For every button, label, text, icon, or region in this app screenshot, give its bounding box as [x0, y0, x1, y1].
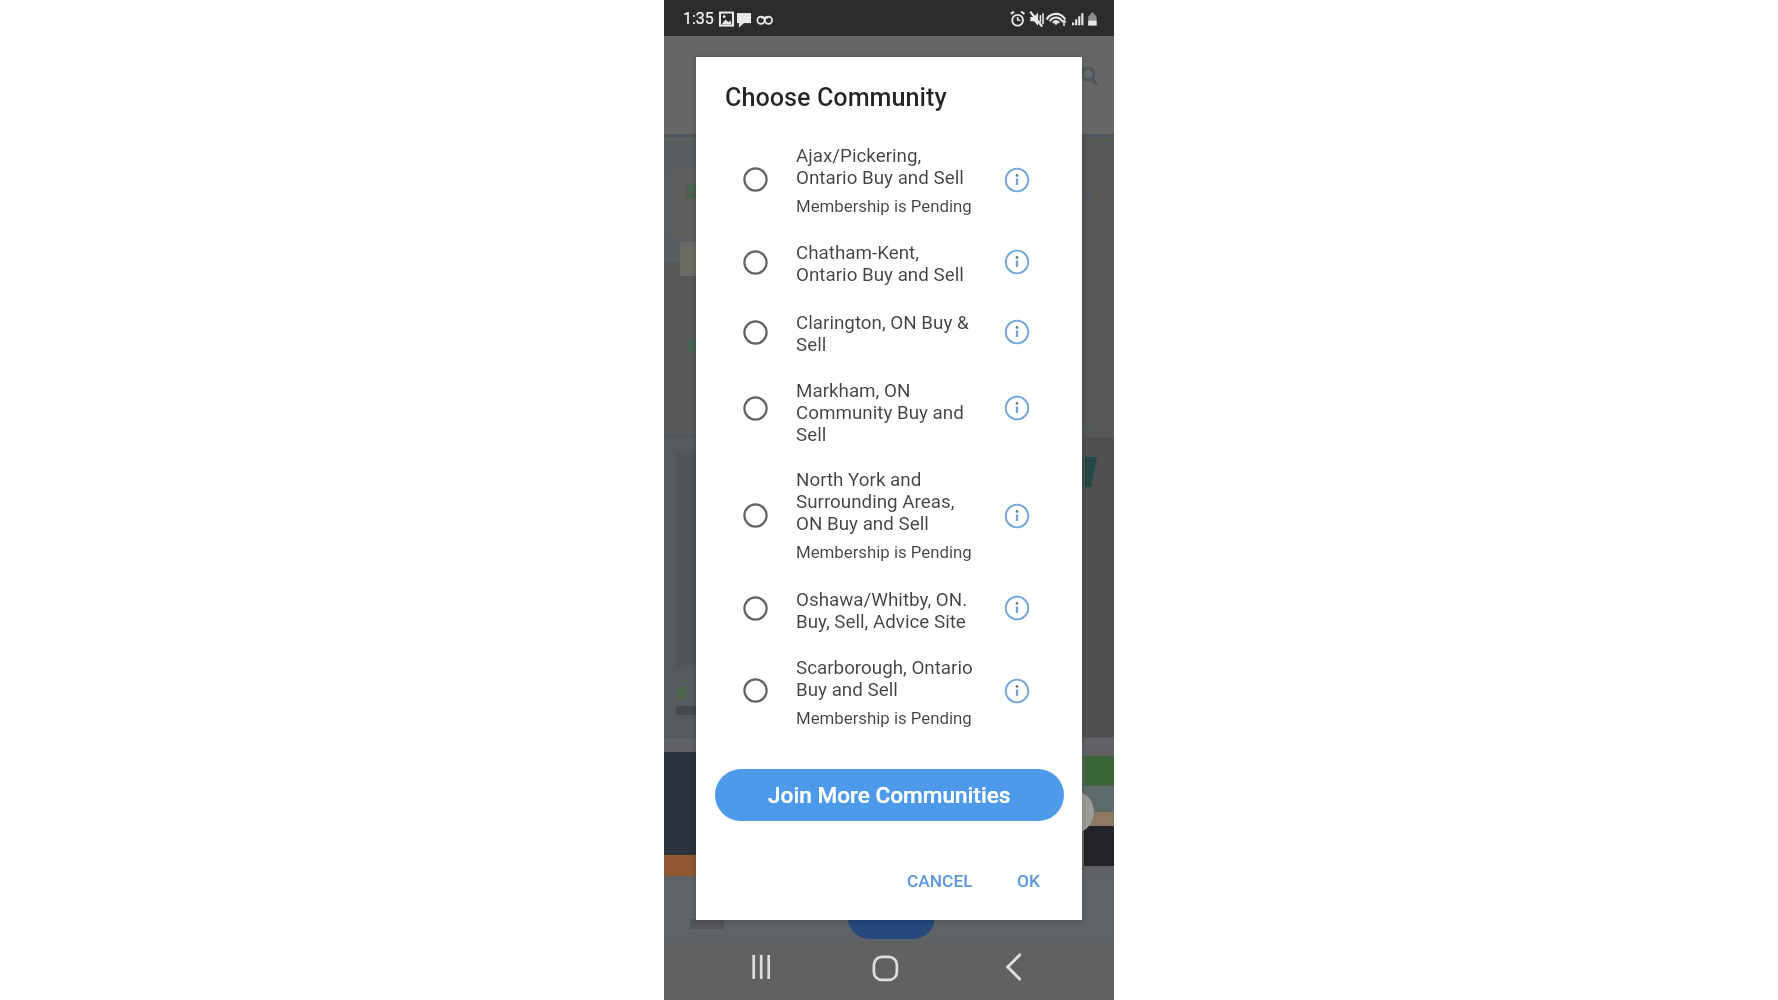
button[interactable]: Oshawa/Whitby, ON. Buy, Sell, Advice Sit…: [736, 580, 998, 636]
staticText: Ontario Buy and Sell: [796, 167, 964, 189]
staticText: Clarington, ON Buy &: [796, 312, 969, 334]
button[interactable]: North York and Surrounding Areas, ON Buy…: [736, 462, 998, 570]
staticText: Community Buy and: [796, 402, 964, 424]
staticText: CANCEL: [907, 871, 973, 891]
staticText: Membership is Pending: [796, 708, 972, 728]
staticText: OK: [1017, 871, 1040, 891]
button[interactable]: Markham, ON Community Buy and Sell: [736, 369, 998, 448]
staticText: 1:35: [683, 9, 714, 28]
staticText: Sell: [796, 334, 827, 356]
staticText: Scarborough, Ontario: [796, 657, 973, 679]
staticText: Ontario Buy and Sell: [796, 264, 964, 286]
button[interactable]: Scarborough, Ontario Buy and Sell: [736, 648, 998, 733]
staticText: ON Buy and Sell: [796, 513, 929, 535]
button[interactable]: Clarington, ON Buy & Sell: [736, 304, 998, 360]
button[interactable]: Ajax/Pickering, Ontario Buy and Sell: [736, 137, 998, 222]
staticText: Surrounding Areas,: [796, 491, 955, 513]
staticText: Oshawa/Whitby, ON.: [796, 589, 968, 611]
button[interactable]: About Ajax/Pickering, Ontario Buy and Se…: [998, 161, 1036, 199]
button[interactable]: CANCEL: [897, 860, 982, 902]
button[interactable]: About Clarington, ON Buy & Sell: [998, 313, 1036, 351]
staticText: Ajax/Pickering,: [796, 145, 922, 167]
button[interactable]: Chatham-Kent, Ontario Buy and Sell: [736, 234, 998, 290]
button[interactable]: About Oshawa/Whitby, ON. Buy, Sell, Advi…: [998, 589, 1036, 627]
staticText: North York and: [796, 469, 922, 491]
button[interactable]: About Markham, ON Community Buy and Sell: [998, 389, 1036, 427]
staticText: Chatham-Kent,: [796, 242, 919, 264]
button[interactable]: OK: [1000, 860, 1056, 902]
staticText: Membership is Pending: [796, 196, 972, 216]
staticText: Buy, Sell, Advice Site: [796, 611, 966, 633]
button[interactable]: About Scarborough, Ontario Buy and Sell: [998, 672, 1036, 710]
button[interactable]: Join More Communities: [715, 769, 1064, 821]
staticText: Choose Community: [725, 83, 947, 113]
staticText: Markham, ON: [796, 380, 911, 402]
button[interactable]: About North York and Surrounding Areas, …: [998, 497, 1036, 535]
staticText: Sell: [796, 424, 827, 446]
staticText: Buy and Sell: [796, 679, 898, 701]
staticText: Join More Communities: [768, 782, 1011, 808]
button[interactable]: About Chatham-Kent, Ontario Buy and Sell: [998, 243, 1036, 281]
staticText: Membership is Pending: [796, 542, 972, 562]
